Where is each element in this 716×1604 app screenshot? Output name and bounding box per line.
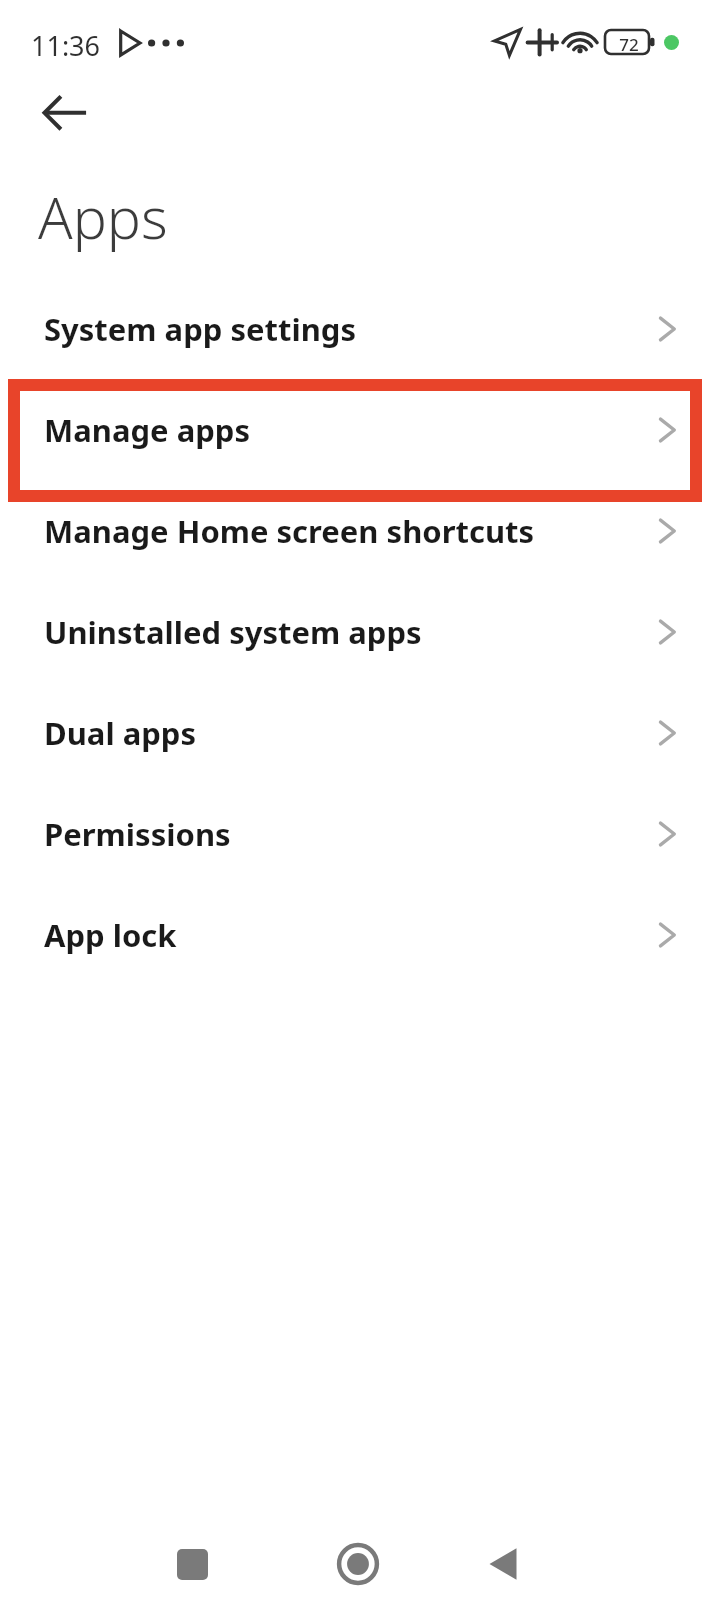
- staticText: Manage Home screen shortcuts: [44, 510, 654, 552]
- button[interactable]: Permissions: [0, 783, 716, 884]
- staticText: System app settings: [44, 308, 654, 350]
- button[interactable]: System app settings: [0, 278, 716, 379]
- staticText: 72: [610, 33, 648, 56]
- staticText: Apps: [38, 178, 168, 256]
- staticText: Dual apps: [44, 712, 654, 754]
- staticText: App lock: [44, 914, 654, 956]
- button[interactable]: Manage apps: [0, 379, 716, 480]
- button[interactable]: Home: [328, 1534, 388, 1594]
- button[interactable]: Recent apps: [162, 1534, 222, 1594]
- button[interactable]: Back: [24, 84, 88, 148]
- button[interactable]: App lock: [0, 884, 716, 985]
- staticText: Permissions: [44, 813, 654, 855]
- button[interactable]: Back: [473, 1534, 533, 1594]
- staticText: Uninstalled system apps: [44, 611, 654, 653]
- staticText: 11:36: [31, 27, 101, 64]
- button[interactable]: Manage Home screen shortcuts: [0, 480, 716, 581]
- staticText: Manage apps: [44, 409, 654, 451]
- button[interactable]: Dual apps: [0, 682, 716, 783]
- button[interactable]: Uninstalled system apps: [0, 581, 716, 682]
